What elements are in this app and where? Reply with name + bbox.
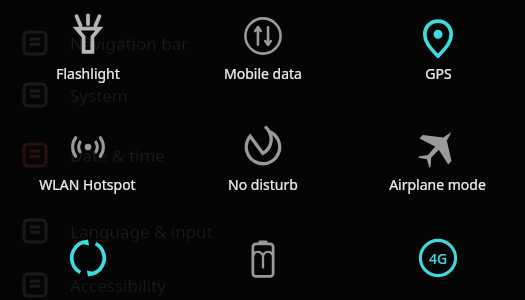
- button[interactable]: WLAN Hotspot: [0, 113, 175, 226]
- staticText: Date & time: [70, 144, 165, 167]
- button[interactable]: Airplane mode: [350, 113, 525, 226]
- staticText: GPS: [425, 64, 452, 83]
- staticText: Airplane mode: [389, 175, 486, 194]
- staticText: Mobile data: [224, 64, 302, 83]
- button[interactable]: 4G network: [350, 226, 525, 300]
- button[interactable]: Mobile data: [175, 0, 350, 113]
- staticText: Language & input: [70, 220, 213, 243]
- staticText: Flashlight: [56, 64, 120, 83]
- staticText: 4G: [429, 249, 448, 268]
- button[interactable]: GPS: [350, 0, 525, 113]
- staticText: Accessibility: [70, 274, 166, 297]
- staticText: No disturb: [228, 175, 298, 194]
- button[interactable]: Do not disturb: [175, 113, 350, 226]
- button[interactable]: Auto rotate: [0, 226, 175, 300]
- button[interactable]: Battery saver: [175, 226, 350, 300]
- staticText: WLAN Hotspot: [39, 175, 136, 194]
- button[interactable]: Flashlight: [0, 0, 175, 113]
- staticText: Navigation bar: [70, 32, 189, 55]
- staticText: System: [70, 84, 128, 107]
